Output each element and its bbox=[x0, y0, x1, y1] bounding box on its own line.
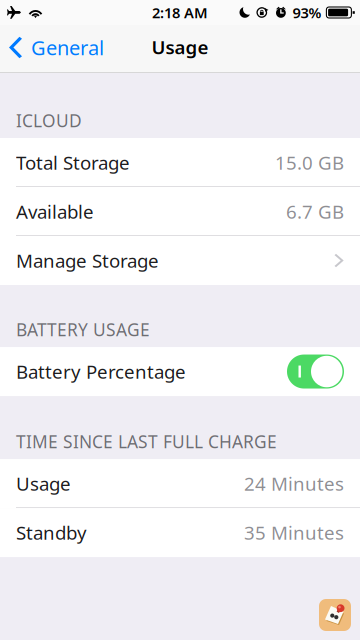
button[interactable]: Battery Percentage, on bbox=[287, 354, 344, 388]
staticText: 2:18 AM bbox=[152, 3, 208, 22]
staticText: Available bbox=[16, 199, 94, 224]
staticText: 15.0 GB bbox=[275, 150, 344, 175]
staticText: 24 Minutes bbox=[244, 471, 344, 496]
staticText: Manage Storage bbox=[16, 248, 159, 273]
staticText: 6.7 GB bbox=[286, 199, 344, 224]
staticText: ICLOUD bbox=[16, 109, 82, 132]
staticText: Battery Percentage bbox=[16, 359, 186, 384]
staticText: BATTERY USAGE bbox=[16, 318, 150, 341]
button[interactable]: Manage Storage bbox=[0, 236, 360, 285]
staticText: Usage bbox=[151, 35, 208, 59]
staticText: General bbox=[31, 34, 104, 61]
staticText: 93% bbox=[292, 3, 321, 22]
button[interactable]: General bbox=[0, 25, 114, 73]
staticText: Usage bbox=[16, 471, 71, 496]
staticText: 35 Minutes bbox=[244, 520, 344, 545]
staticText: TIME SINCE LAST FULL CHARGE bbox=[16, 430, 277, 453]
button[interactable]: Notes shortcut bbox=[319, 599, 351, 631]
staticText: Standby bbox=[16, 520, 87, 545]
staticText: Total Storage bbox=[16, 150, 130, 175]
